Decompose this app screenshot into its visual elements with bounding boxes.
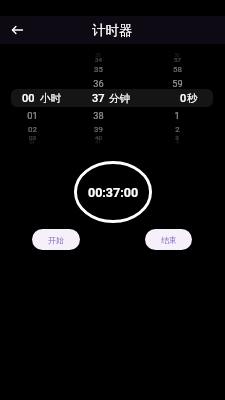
staticText: 33 xyxy=(95,53,101,58)
staticText: 开始 xyxy=(48,235,64,245)
button[interactable]: 开始 xyxy=(32,229,80,250)
staticText: 秒 xyxy=(187,92,198,105)
staticText: 56 xyxy=(174,53,180,58)
staticText: 计时器 xyxy=(92,22,133,39)
staticText: 小时 xyxy=(40,92,62,105)
staticText: 57 xyxy=(174,56,181,63)
staticText: 02 xyxy=(28,125,37,134)
staticText: 58 xyxy=(173,65,182,74)
staticText: 2 xyxy=(175,125,180,134)
staticText: 分钟 xyxy=(109,92,131,105)
button[interactable]: 结束 xyxy=(145,229,192,250)
staticText: 36 xyxy=(93,78,104,89)
staticText: 59 xyxy=(172,78,183,89)
staticText: 结束 xyxy=(161,235,177,245)
staticText: 34 xyxy=(95,56,102,63)
staticText: 0 xyxy=(180,92,187,105)
staticText: 4 xyxy=(176,140,179,145)
staticText: 04 xyxy=(29,140,35,145)
staticText: 3 xyxy=(175,134,179,141)
staticText: 1 xyxy=(174,110,180,121)
staticText: 38 xyxy=(93,110,104,121)
staticText: 03 xyxy=(29,134,36,141)
staticText: 40 xyxy=(95,134,102,141)
button[interactable]: Back xyxy=(8,21,26,39)
staticText: 00:37:00 xyxy=(88,185,139,200)
staticText: 37 xyxy=(92,92,105,105)
staticText: 01 xyxy=(27,110,38,121)
staticText: 41 xyxy=(95,140,101,145)
staticText: 00 xyxy=(22,92,35,105)
staticText: 35 xyxy=(94,65,103,74)
staticText: 39 xyxy=(94,125,103,134)
